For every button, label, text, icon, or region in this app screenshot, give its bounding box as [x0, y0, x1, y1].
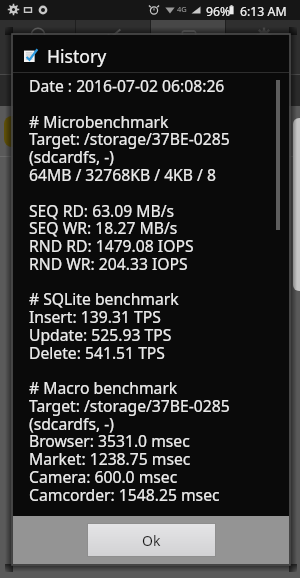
staticText: Target: /storage/37BE-0285: [29, 128, 230, 149]
staticText: Date : 2016-07-02 06:08:26: [29, 75, 225, 96]
staticText: 64MB / 32768KB / 4KB / 8: [29, 164, 216, 185]
button[interactable]: Ok: [88, 524, 215, 556]
staticText: RND WR: 204.33 IOPS: [29, 253, 188, 274]
staticText: Target: /storage/37BE-0285: [29, 395, 230, 416]
staticText: Insert: 139.31 TPS: [29, 306, 161, 327]
staticText: # SQLite benchmark: [29, 288, 179, 309]
staticText: Camera: 600.0 msec: [29, 466, 178, 487]
staticText: Storage: [22, 46, 54, 58]
staticText: (sdcardfs, -): [29, 146, 114, 167]
staticText: (sdcardfs, -): [29, 413, 114, 434]
staticText: 6:13 AM: [240, 3, 287, 20]
staticText: Ok: [142, 531, 161, 550]
staticText: Browser: 3531.0 msec: [29, 430, 190, 451]
staticText: Update: 525.93 TPS: [29, 324, 172, 345]
staticText: SEQ RD: 63.09 MB/s: [29, 200, 175, 221]
staticText: SEQ WR: 18.27 MB/s: [29, 217, 178, 238]
button[interactable]: Setting: [226, 20, 300, 74]
staticText: 96%: [206, 3, 231, 20]
button[interactable]: Test: [76, 20, 150, 74]
staticText: # Microbenchmark: [29, 111, 169, 132]
staticText: Delete: 541.51 TPS: [29, 342, 165, 363]
staticText: Camcorder: 1548.25 msec: [29, 484, 220, 505]
staticText: History: [47, 44, 107, 68]
staticText: Market: 1238.75 msec: [29, 448, 191, 469]
button[interactable]: Result: [151, 20, 225, 74]
staticText: RND RD: 1479.08 IOPS: [29, 235, 194, 256]
staticText: Test: [105, 46, 122, 58]
button[interactable]: Storage: [0, 20, 75, 74]
staticText: # Macro benchmark: [29, 377, 178, 398]
staticText: 4G: [177, 4, 187, 14]
